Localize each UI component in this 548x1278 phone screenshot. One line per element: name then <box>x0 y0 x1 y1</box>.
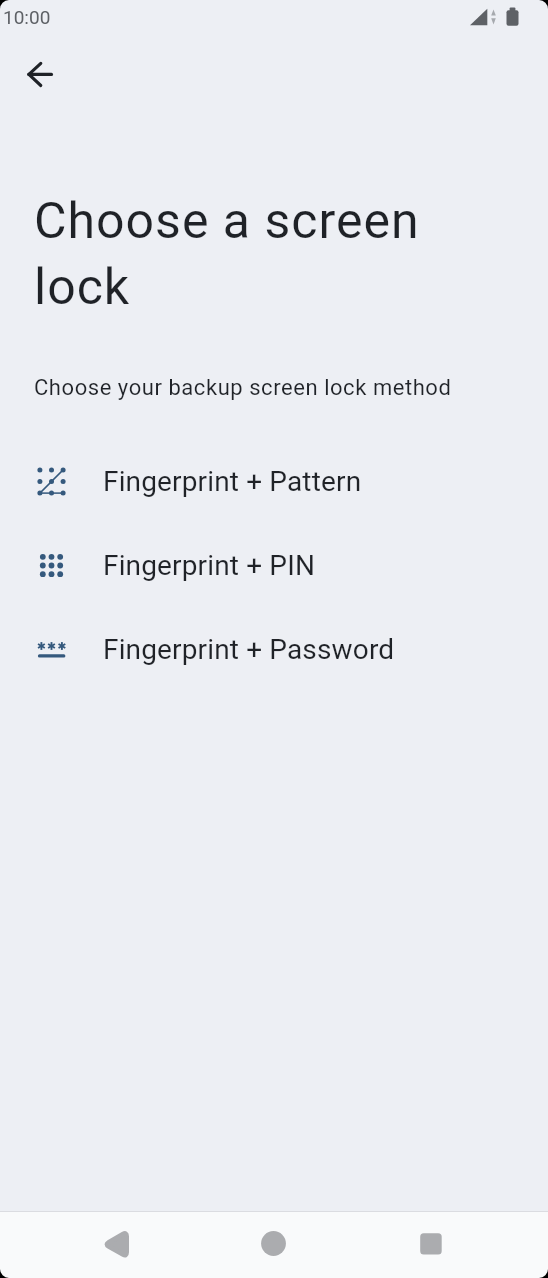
staticText: Fingerprint + PIN <box>103 549 316 582</box>
button[interactable] <box>249 1219 298 1268</box>
button[interactable] <box>16 50 64 98</box>
staticText: Choose your backup screen lock method <box>34 375 452 401</box>
button[interactable] <box>92 1219 141 1268</box>
button[interactable]: Fingerprint + Password <box>0 607 548 691</box>
staticText: 10:00 <box>3 6 51 28</box>
button[interactable]: Fingerprint + PIN <box>0 523 548 607</box>
staticText: Fingerprint + Pattern <box>103 465 362 498</box>
staticText: Fingerprint + Password <box>103 633 395 666</box>
button[interactable] <box>406 1219 455 1268</box>
button[interactable]: Fingerprint + Pattern <box>0 439 548 523</box>
staticText: Choose a screen lock <box>34 192 420 316</box>
